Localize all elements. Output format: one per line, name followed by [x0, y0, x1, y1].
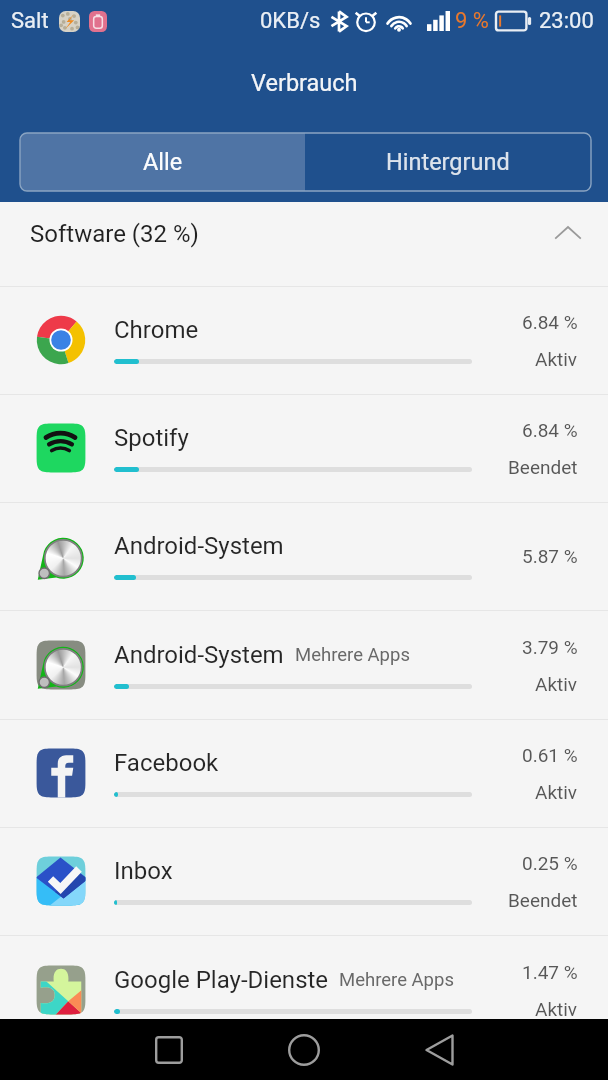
staticText: Facebook	[114, 749, 219, 777]
button[interactable]: Startseite	[259, 1019, 349, 1080]
staticText: 6.84 %	[522, 419, 578, 441]
staticText: Hintergrund	[386, 148, 510, 176]
staticText: Aktiv	[535, 998, 578, 1020]
staticText: Software (32 %)	[30, 220, 199, 248]
button[interactable]: Chrome	[0, 287, 608, 395]
other: Einklappen	[552, 220, 584, 252]
button[interactable]: Hintergrund	[305, 133, 591, 191]
staticText: 3.79 %	[522, 636, 578, 658]
staticText: 0KB/s	[260, 8, 321, 34]
staticText: Mehrere Apps	[295, 644, 410, 666]
button[interactable]: Zurück	[394, 1019, 484, 1080]
staticText: Android-System	[114, 532, 284, 560]
staticText: Inbox	[114, 857, 173, 885]
staticText: 1.47 %	[522, 961, 578, 983]
button[interactable]: Inbox	[0, 828, 608, 936]
staticText: 9 %	[455, 8, 489, 34]
staticText: Alle	[143, 148, 183, 176]
button[interactable]: Letzte Apps	[124, 1019, 214, 1080]
button[interactable]: Android-System	[0, 612, 608, 720]
staticText: Google Play-Dienste	[114, 966, 329, 994]
staticText: Beendet	[508, 456, 578, 478]
staticText: Spotify	[114, 424, 189, 452]
staticText: Beendet	[508, 889, 578, 911]
staticText: Salt	[11, 8, 49, 34]
staticText: Android-System	[114, 641, 284, 669]
staticText: 5.87 %	[522, 545, 578, 567]
staticText: Aktiv	[535, 781, 578, 803]
button[interactable]: Google Play-Dienste	[0, 937, 608, 1045]
button[interactable]: Software (32 %)	[0, 202, 608, 287]
staticText: 0.25 %	[522, 852, 578, 874]
button[interactable]: Facebook	[0, 720, 608, 828]
staticText: Aktiv	[535, 348, 578, 370]
staticText: 6.84 %	[522, 311, 578, 333]
staticText: Chrome	[114, 316, 199, 344]
button[interactable]: Alle	[20, 133, 305, 191]
staticText: Aktiv	[535, 673, 578, 695]
staticText: Mehrere Apps	[339, 969, 454, 991]
staticText: 0.61 %	[522, 744, 578, 766]
button[interactable]: Spotify	[0, 395, 608, 503]
button[interactable]: Android-System	[0, 503, 608, 611]
staticText: Verbrauch	[251, 69, 358, 97]
staticText: 23:00	[539, 8, 594, 34]
